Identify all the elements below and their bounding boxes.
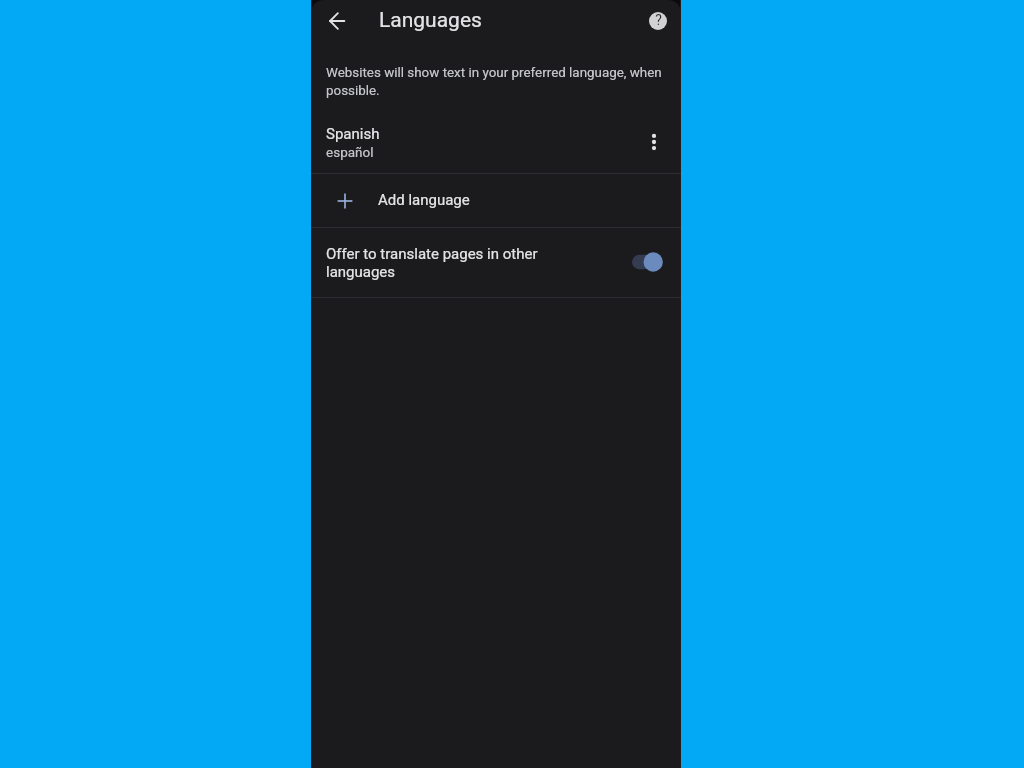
staticText: Spanish [326, 125, 380, 143]
staticText: Add language [378, 191, 470, 209]
staticText: Offer to translate pages in other langua… [326, 245, 544, 281]
button[interactable]: More options for Spanish [641, 129, 667, 155]
button[interactable]: Offer to translate pages in other langua… [631, 251, 665, 273]
button[interactable]: Offer to translate pages in other langua… [311, 228, 681, 297]
staticText: Languages [379, 8, 482, 33]
button[interactable]: Add language [311, 174, 681, 227]
staticText: ? [655, 12, 662, 28]
staticText: Websites will show text in your preferre… [326, 65, 666, 98]
button[interactable]: Help [645, 8, 671, 34]
button[interactable]: Back [324, 8, 350, 34]
button[interactable]: Spanish [311, 110, 681, 173]
staticText: español [326, 144, 374, 160]
